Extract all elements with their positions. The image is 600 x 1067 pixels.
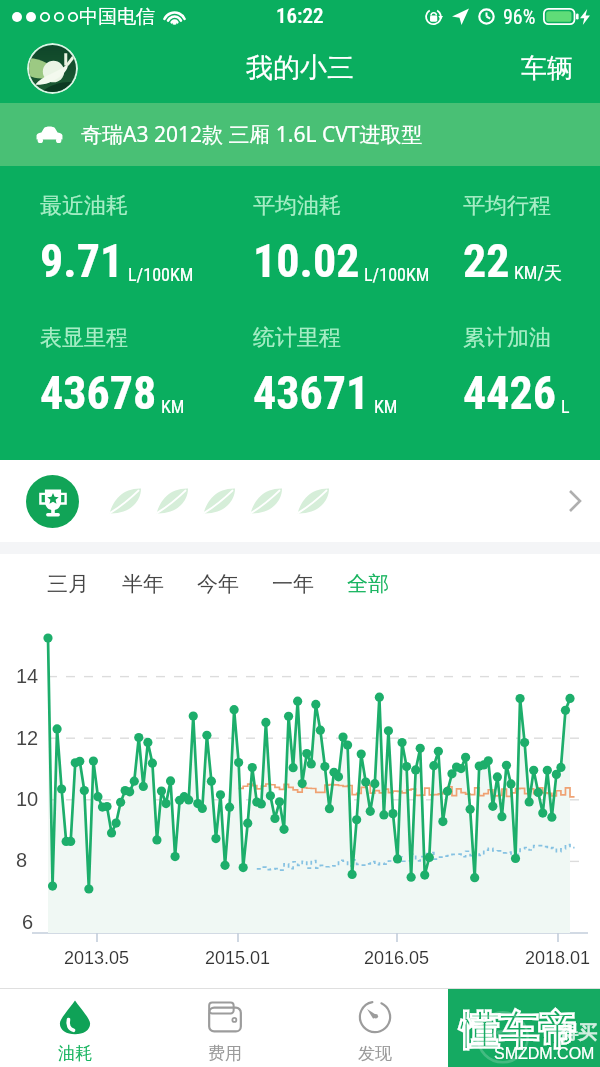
staticText: 10 — [16, 788, 39, 810]
staticText: 2015.01 — [205, 948, 271, 968]
staticText: SMZDM.COM — [494, 1045, 595, 1063]
button[interactable]: Profile — [27, 43, 78, 94]
staticText: 累计加油 — [463, 324, 551, 352]
staticText: 最近油耗 — [40, 192, 128, 220]
staticText: 三月 — [47, 571, 89, 597]
staticText: 22 — [463, 234, 510, 288]
other: More — [568, 489, 582, 513]
staticText: 奇瑞A3 2012款 三厢 1.6L CVT进取型 — [81, 120, 423, 149]
button[interactable]: 一年 — [264, 561, 322, 607]
staticText: 懂车帝 — [460, 1006, 577, 1055]
staticText: 油耗 — [58, 1043, 92, 1064]
button[interactable]: 今年 — [189, 561, 247, 607]
staticText: 43671 — [253, 366, 370, 420]
staticText: 我的小三 — [246, 51, 354, 85]
staticText: 全部 — [347, 571, 389, 597]
staticText: 车辆 — [521, 52, 573, 85]
staticText: 今年 — [197, 571, 239, 597]
button[interactable]: More — [0, 460, 600, 542]
button[interactable]: 油耗 — [0, 989, 150, 1067]
button[interactable]: 车辆 — [503, 40, 600, 97]
staticText: 96% — [503, 5, 536, 28]
other: Rotation lock — [425, 8, 443, 26]
staticText: 8 — [16, 849, 28, 871]
staticText: 2016.05 — [364, 948, 430, 968]
staticText: 2018.01 — [525, 948, 591, 968]
staticText: 4426 — [463, 366, 557, 420]
staticText: 表显里程 — [40, 324, 128, 352]
staticText: L — [561, 396, 570, 417]
staticText: L/100KM — [364, 264, 430, 285]
staticText: KM — [161, 396, 185, 417]
staticText: 一年 — [272, 571, 314, 597]
staticText: 9.71 — [40, 234, 124, 288]
staticText: 16:22 — [276, 4, 324, 29]
staticText: 发现 — [358, 1043, 392, 1064]
staticText: 统计里程 — [253, 324, 341, 352]
button[interactable]: 半年 — [114, 561, 172, 607]
staticText: 43678 — [40, 366, 157, 420]
staticText: 平均油耗 — [253, 192, 341, 220]
staticText: 费用 — [208, 1043, 242, 1064]
staticText: 得买 — [559, 1021, 597, 1045]
staticText: 14 — [16, 665, 39, 687]
staticText: L/100KM — [128, 264, 194, 285]
button[interactable]: 奇瑞A3 2012款 三厢 1.6L CVT进取型 — [0, 103, 600, 166]
staticText: 12 — [16, 727, 39, 749]
staticText: 半年 — [122, 571, 164, 597]
staticText: 10.02 — [253, 234, 360, 288]
staticText: 中国电信 — [79, 5, 155, 29]
staticText: KM — [374, 396, 398, 417]
button[interactable]: 发现 — [300, 989, 450, 1067]
button[interactable]: 费用 — [150, 989, 300, 1067]
staticText: KM/天 — [514, 262, 563, 285]
staticText: 2013.05 — [64, 948, 130, 968]
staticText: 6 — [22, 911, 34, 933]
button[interactable]: 三月 — [39, 561, 97, 607]
button[interactable]: 全部 — [339, 561, 397, 607]
staticText: 平均行程 — [463, 192, 551, 220]
